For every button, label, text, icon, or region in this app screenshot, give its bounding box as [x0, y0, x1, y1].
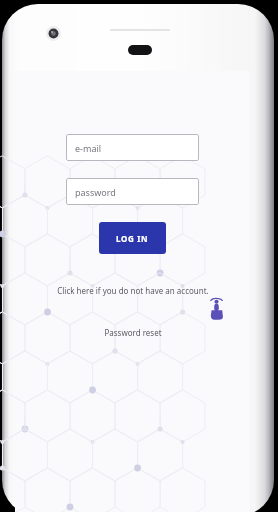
staticText: password — [75, 186, 116, 198]
staticText: e-mail — [75, 142, 102, 154]
staticText: Password reset — [104, 327, 162, 338]
staticText: Click here if you do not have an account… — [57, 285, 209, 296]
button[interactable]: e-mail — [66, 134, 199, 161]
staticText: LOG IN — [116, 233, 149, 244]
button[interactable]: Click here if you do not have an account… — [25, 285, 240, 296]
button[interactable]: Password reset — [15, 327, 250, 338]
button[interactable]: Tap here to register — [207, 298, 226, 320]
button[interactable]: LOG IN — [99, 222, 166, 254]
button[interactable]: password — [66, 178, 199, 205]
